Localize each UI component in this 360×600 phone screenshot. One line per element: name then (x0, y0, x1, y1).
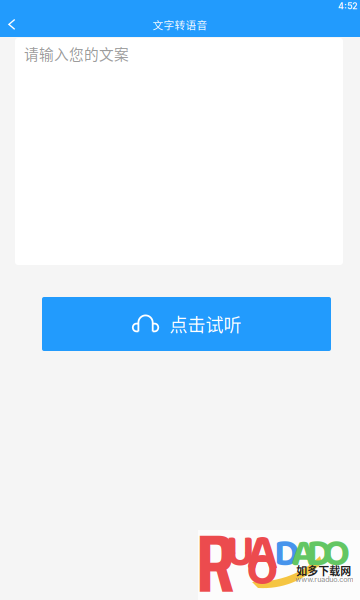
staticText: D (274, 523, 300, 585)
button[interactable]: Back (0, 12, 24, 37)
staticText: A (291, 523, 315, 585)
staticText: O (323, 523, 350, 585)
staticText: U (226, 517, 255, 588)
staticText: 请输入您的文案 (24, 43, 129, 64)
button[interactable]: 点击试听 (42, 297, 331, 351)
staticText: 文字转语音 (152, 17, 207, 32)
staticText: R (195, 501, 235, 600)
staticText: O (246, 535, 278, 600)
staticText: D (306, 523, 332, 585)
staticText: A (247, 513, 278, 595)
staticText: 4:52 (338, 1, 357, 11)
staticText: www.ruaduo.com (295, 575, 353, 584)
staticText: 点击试听 (169, 311, 241, 337)
staticText: 如多下载网 (296, 563, 351, 578)
